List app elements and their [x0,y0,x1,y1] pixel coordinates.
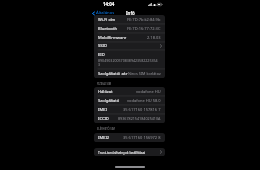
staticText: Bluetooth [98,26,117,32]
button[interactable]: Hálózat [94,87,165,96]
staticText: SSID [98,43,107,49]
button[interactable]: Wi-Fi cím [94,15,165,24]
staticText: IMEI2 [98,135,110,141]
staticText: ICCID [98,116,109,122]
button[interactable]: IMEI2 [94,133,165,142]
button[interactable]: Trust-tanúsítványok beállításai [94,148,165,156]
staticText: Szolgáltató [98,98,120,104]
staticText: Mobilfirmware [98,35,127,41]
button[interactable]: ICCID [94,114,165,123]
button[interactable]: EID [94,50,165,69]
staticText: FE:7D:16:77:72:3C [127,26,161,31]
staticText: Trust-tanúsítványok beállításai [98,150,146,154]
button[interactable]: Mobilfirmware [94,33,165,42]
staticText: EID [98,52,105,58]
staticText: ELÉRHETŐ SIM [97,127,115,131]
staticText: 35 617160 157816 7 [123,107,161,112]
staticText: 89049032005708389423582225354 3 [98,58,158,67]
staticText: FIZIKAI SIM [97,82,112,86]
staticText: Szolgáltatói zár [98,71,128,77]
staticText: 2.18.03 [147,35,161,40]
staticText: FE:7D:7b:k2:84:9b [127,17,161,22]
staticText: 14:04 [103,1,115,7]
staticText: IMEI [98,107,107,113]
staticText: 8936782154184025410A [118,116,161,121]
button[interactable]: Általános [92,10,115,16]
staticText: Általános [96,10,115,16]
staticText: Infó [126,10,135,16]
staticText: Nincs SIM korlátozás [128,71,161,76]
staticText: vodafone HU [136,89,161,94]
button[interactable]: IMEI [94,105,165,114]
staticText: 35 617160 156972 8 [123,135,161,140]
staticText: Wi-Fi cím [98,17,116,23]
button[interactable]: Szolgáltató [94,96,165,105]
staticText: Hálózat [98,89,113,95]
button[interactable]: Szolgáltatói zár [94,69,165,78]
button[interactable]: SSID [94,42,165,50]
button[interactable]: Bluetooth [94,24,165,33]
staticText: vodafone HU 58.0 [127,98,161,103]
